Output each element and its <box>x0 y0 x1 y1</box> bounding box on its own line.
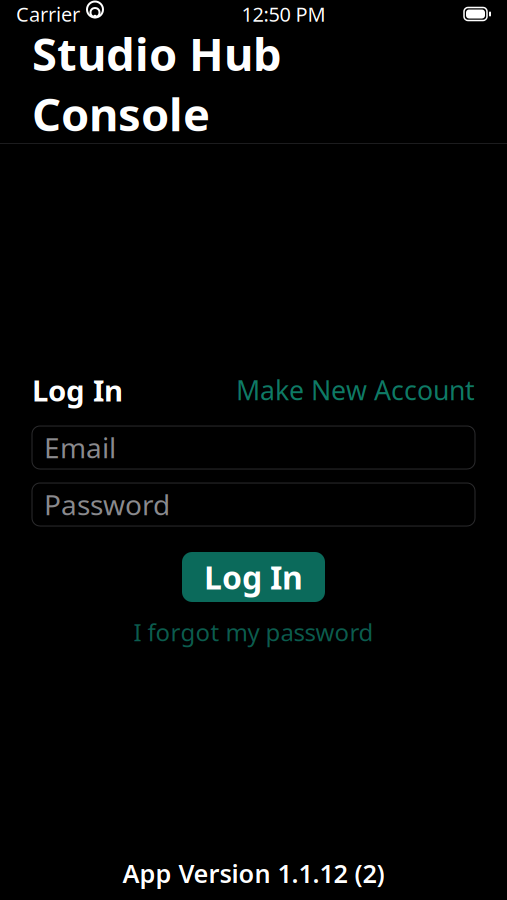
staticText: 12:50 PM <box>241 1 325 27</box>
staticText: Log In <box>204 556 303 598</box>
staticText: Make New Account <box>236 372 475 408</box>
staticText: Password <box>44 486 170 523</box>
button[interactable]: I forgot my password <box>133 618 373 646</box>
staticText: App Version 1.1.12 (2) <box>122 856 384 890</box>
button[interactable]: Log In <box>182 552 325 602</box>
staticText: Email <box>44 429 116 466</box>
staticText: I forgot my password <box>133 616 373 648</box>
staticText: Log In <box>32 370 123 409</box>
staticText: Studio Hub Console <box>32 23 282 144</box>
staticText: Carrier <box>16 1 80 27</box>
button[interactable]: Make New Account <box>236 372 475 408</box>
